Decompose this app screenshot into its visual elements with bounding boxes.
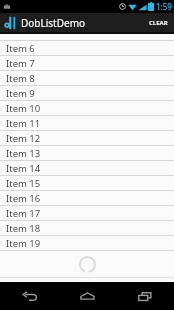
staticText: Item 11: [6, 117, 41, 130]
button[interactable]: Item 10: [0, 101, 174, 115]
button[interactable]: Item 9: [0, 86, 174, 100]
staticText: CLEAR: [149, 19, 168, 27]
staticText: 1:59: [156, 1, 172, 12]
staticText: Item 15: [6, 177, 41, 190]
staticText: Item 13: [6, 147, 41, 160]
staticText: Item 19: [6, 237, 41, 250]
button[interactable]: Item 6: [0, 41, 174, 55]
button[interactable]: Item 8: [0, 71, 174, 85]
staticText: Item 18: [6, 222, 41, 235]
button[interactable]: Home: [58, 282, 116, 310]
button[interactable]: CLEAR: [143, 13, 174, 32]
staticText: Item 12: [6, 132, 41, 145]
staticText: Item 9: [6, 87, 35, 100]
staticText: Item 17: [6, 207, 41, 220]
staticText: DobListDemo: [21, 16, 86, 30]
staticText: Item 6: [6, 42, 35, 55]
button[interactable]: Item 14: [0, 161, 174, 175]
button[interactable]: Item 12: [0, 131, 174, 145]
staticText: Item 14: [6, 162, 41, 175]
staticText: Item 16: [6, 192, 41, 205]
button[interactable]: Back: [0, 282, 58, 310]
button[interactable]: Item 18: [0, 221, 174, 235]
button[interactable]: Recent apps: [116, 282, 174, 310]
button[interactable]: Item 13: [0, 146, 174, 160]
staticText: Item 10: [6, 102, 41, 115]
button[interactable]: Item 15: [0, 176, 174, 190]
button[interactable]: Item 19: [0, 236, 174, 250]
staticText: Item 8: [6, 72, 35, 85]
button[interactable]: Item 17: [0, 206, 174, 220]
button[interactable]: Item 7: [0, 56, 174, 70]
button[interactable]: Item 11: [0, 116, 174, 130]
staticText: Item 5: [6, 25, 35, 31]
button[interactable]: Item 16: [0, 191, 174, 205]
staticText: Item 7: [6, 57, 35, 70]
